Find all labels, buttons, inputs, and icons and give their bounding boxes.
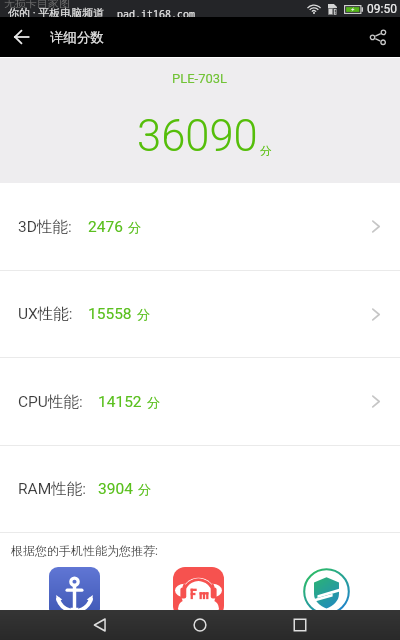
staticText: 分 [260,144,272,158]
button[interactable]: Back [50,610,150,640]
button[interactable]: Share [356,17,400,57]
staticText: pad.it168.com [117,7,195,21]
button[interactable]: Back [0,17,42,57]
staticText: PLE-703L [172,71,228,86]
staticText: UX性能: [18,304,73,324]
button[interactable]: Anchor app [49,567,100,618]
staticText: 分 [128,219,141,235]
staticText: 你的 · 平板电脑频道 [8,6,105,20]
staticText: 无损卡自家图 [4,0,70,10]
staticText: 3904 [98,480,133,498]
button[interactable]: Recent apps [250,610,350,640]
staticText: 15558 [88,305,132,323]
button[interactable]: CPU性能: [0,358,400,445]
staticText: 09:50 [367,2,397,16]
staticText: 2476 [88,218,123,236]
staticText: 分 [137,306,150,322]
staticText: 3D性能: [18,217,72,237]
button[interactable]: FM radio app [173,567,224,618]
staticText: 根据您的手机性能为您推荐: [11,543,158,558]
button[interactable]: Security app [302,567,351,616]
staticText: 36090 [137,111,258,162]
staticText: CPU性能: [18,392,83,412]
button[interactable]: RAM性能: [0,446,400,532]
staticText: 分 [147,394,160,410]
staticText: RAM性能: [18,479,86,499]
staticText: 14152 [98,393,142,411]
staticText: 分 [138,481,151,497]
button[interactable]: 3D性能: [0,183,400,270]
button[interactable]: UX性能: [0,271,400,357]
staticText: 详细分数 [50,29,104,46]
button[interactable]: Home [150,610,250,640]
